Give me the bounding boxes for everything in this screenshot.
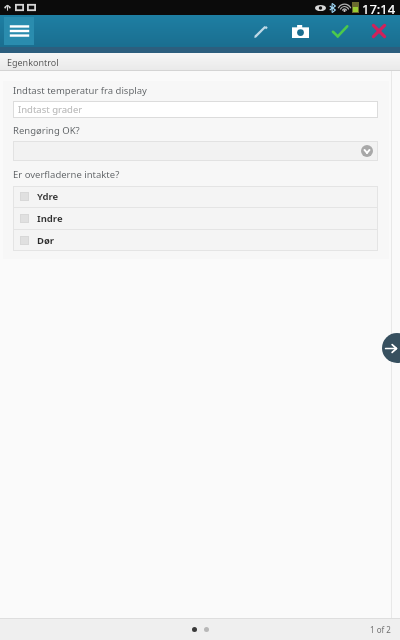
button[interactable]: Cancel xyxy=(366,18,392,44)
button[interactable]: Edit xyxy=(247,18,273,44)
staticText: Rengøring OK? xyxy=(13,124,80,137)
button[interactable]: Next page xyxy=(382,333,400,363)
button[interactable]: Indre xyxy=(13,208,378,229)
staticText: Ydre xyxy=(37,190,59,203)
button[interactable]: Indtast grader xyxy=(13,101,378,118)
button[interactable]: Dør xyxy=(13,230,378,251)
staticText: Dør xyxy=(37,234,55,247)
staticText: Er overfladerne intakte? xyxy=(13,168,120,181)
button[interactable]: Save xyxy=(327,18,353,44)
button[interactable]: Rengøring OK dropdown xyxy=(13,141,378,161)
staticText: Indre xyxy=(37,212,63,225)
staticText: Indtast grader xyxy=(18,103,83,116)
button[interactable]: Menu xyxy=(4,17,34,45)
staticText: 1 of 2 xyxy=(370,624,391,635)
staticText: Egenkontrol xyxy=(7,56,59,68)
button[interactable]: Camera xyxy=(287,18,313,44)
staticText: Indtast temperatur fra display xyxy=(13,84,147,97)
staticText: 17:14 xyxy=(362,0,396,15)
button[interactable]: Ydre xyxy=(13,186,378,207)
